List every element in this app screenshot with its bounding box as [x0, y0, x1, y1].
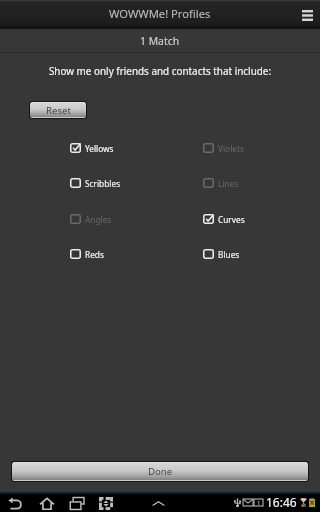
staticText: Yellows [85, 143, 114, 154]
staticText: Done [148, 465, 173, 478]
button[interactable]: Done [12, 462, 308, 481]
button[interactable]: Reset [30, 102, 86, 118]
button[interactable]: Expand [146, 492, 172, 512]
button[interactable]: Reds [70, 245, 104, 263]
button[interactable]: Angles [70, 210, 112, 228]
staticText: Reset [46, 104, 71, 117]
staticText: Reds [85, 249, 104, 260]
button[interactable]: Blues [203, 245, 240, 263]
button[interactable]: Curves [203, 210, 245, 228]
staticText: Blues [218, 249, 240, 260]
button[interactable]: Lines [203, 174, 239, 192]
staticText: 16:46 [266, 494, 297, 510]
button[interactable]: Yellows [70, 139, 114, 157]
button[interactable]: Screenshot [93, 492, 119, 512]
staticText: Violets [218, 143, 244, 154]
staticText: Show me only friends and contacts that i… [0, 64, 320, 77]
staticText: Angles [85, 214, 112, 225]
button[interactable]: Scribbles [70, 174, 121, 192]
staticText: 1 Match [140, 34, 180, 48]
button[interactable]: Home [34, 492, 60, 512]
button[interactable]: Menu [294, 0, 320, 29]
button[interactable]: Recents [64, 492, 90, 512]
button[interactable]: Back [2, 492, 28, 512]
staticText: Curves [218, 214, 245, 225]
staticText: Lines [218, 178, 239, 189]
staticText: 1 [257, 499, 261, 506]
staticText: Scribbles [85, 178, 121, 189]
button[interactable]: Violets [203, 139, 244, 157]
staticText: WOWWMe! Profiles [109, 6, 211, 21]
